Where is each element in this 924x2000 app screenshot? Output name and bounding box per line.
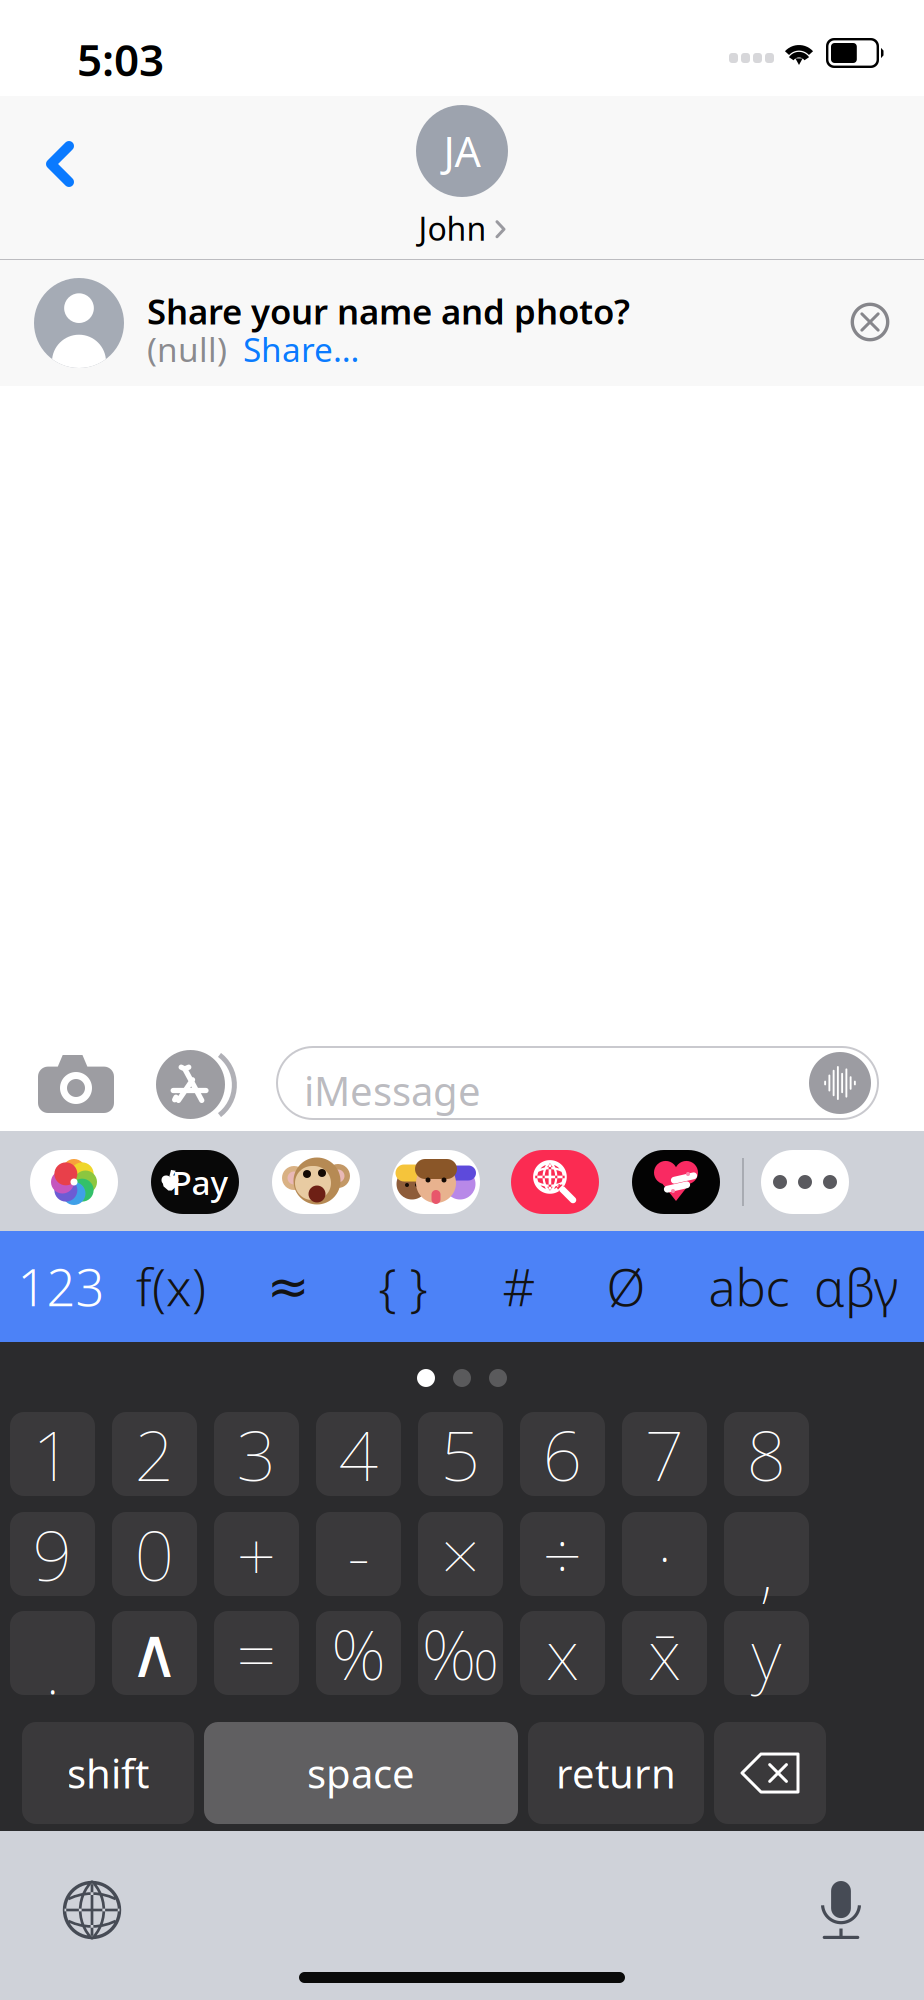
button[interactable]: Memoji <box>272 1150 360 1214</box>
button[interactable]: Camera <box>0 1038 118 1131</box>
staticText: αβγ <box>814 1253 898 1320</box>
staticText: ‰ <box>421 1607 499 1699</box>
staticText: 6 <box>542 1408 582 1500</box>
button[interactable]: 4 <box>316 1412 401 1496</box>
staticText: 9 <box>32 1508 72 1600</box>
button[interactable]: ∧ <box>112 1611 197 1695</box>
staticText: 5 <box>440 1408 480 1500</box>
button[interactable]: Audio message <box>809 1052 871 1114</box>
staticText: shift <box>67 1746 149 1799</box>
button[interactable]: space <box>204 1722 518 1824</box>
button[interactable]: 0 <box>112 1512 197 1596</box>
staticText: 5:03 <box>77 30 164 88</box>
button[interactable]: Apple Pay <box>151 1150 239 1214</box>
button[interactable]: , <box>724 1512 809 1596</box>
button[interactable]: 1 <box>10 1412 95 1496</box>
button[interactable]: 2 <box>112 1412 197 1496</box>
staticText: # <box>502 1253 535 1320</box>
staticText: John <box>418 207 486 249</box>
staticText: ≈ <box>267 1258 309 1315</box>
button[interactable]: ‰ <box>418 1611 503 1695</box>
button[interactable]: Memoji stickers <box>392 1150 480 1214</box>
button[interactable]: More <box>761 1150 849 1214</box>
button[interactable]: Dictate <box>786 1855 896 1965</box>
button[interactable]: x <box>520 1611 605 1695</box>
button[interactable]: Share… <box>227 327 359 371</box>
staticText: + <box>236 1508 276 1600</box>
staticText: abc <box>708 1253 789 1320</box>
button[interactable]: = <box>214 1611 299 1695</box>
staticText: x <box>546 1607 579 1699</box>
staticText: Ø <box>606 1253 645 1320</box>
button[interactable]: × <box>418 1512 503 1596</box>
button[interactable]: { } <box>351 1231 455 1342</box>
button[interactable]: 5 <box>418 1412 503 1496</box>
staticText: ÷ <box>542 1508 582 1600</box>
staticText: - <box>347 1508 369 1600</box>
staticText: f(x) <box>136 1253 206 1320</box>
staticText: return <box>556 1746 676 1799</box>
button[interactable]: 7 <box>622 1412 707 1496</box>
button[interactable]: 123 <box>9 1231 113 1342</box>
button[interactable]: Apps <box>148 1038 258 1131</box>
button[interactable]: Switch keyboard <box>37 1855 147 1965</box>
staticText: ∧ <box>129 1614 180 1692</box>
staticText: , <box>760 1522 773 1614</box>
staticText: . <box>45 1621 60 1713</box>
button[interactable]: shift <box>22 1722 194 1824</box>
button[interactable]: 6 <box>520 1412 605 1496</box>
staticText: x̄ <box>648 1607 681 1699</box>
button[interactable]: # <box>467 1231 571 1342</box>
button[interactable]: y <box>724 1611 809 1695</box>
button[interactable]: Fitness <box>632 1150 720 1214</box>
staticText: iMessage <box>304 1064 481 1117</box>
button[interactable]: 8 <box>724 1412 809 1496</box>
button[interactable]: return <box>528 1722 704 1824</box>
button[interactable]: αβγ <box>804 1231 908 1342</box>
staticText: y <box>751 1607 781 1699</box>
button[interactable]: Ø <box>574 1231 678 1342</box>
button[interactable]: Back <box>0 118 104 214</box>
staticText: 123 <box>17 1253 104 1320</box>
staticText: space <box>307 1746 415 1799</box>
staticText: 4 <box>338 1408 378 1500</box>
button[interactable]: x̄ <box>622 1611 707 1695</box>
button[interactable]: f(x) <box>119 1231 223 1342</box>
button[interactable]: % <box>316 1611 401 1695</box>
button[interactable]: ≈ <box>236 1231 340 1342</box>
staticText: { } <box>378 1253 427 1320</box>
button[interactable]: . <box>10 1611 95 1695</box>
staticText: 1 <box>32 1408 72 1500</box>
button[interactable]: 9 <box>10 1512 95 1596</box>
button[interactable]: JA <box>312 105 612 247</box>
staticText: 7 <box>644 1408 684 1500</box>
staticText: (null) <box>147 327 227 371</box>
button[interactable]: · <box>622 1512 707 1596</box>
staticText: 0 <box>134 1508 174 1600</box>
staticText: 8 <box>746 1408 786 1500</box>
button[interactable]: Photos <box>30 1150 118 1214</box>
staticText: JA <box>443 124 480 178</box>
button[interactable]: Images <box>511 1150 599 1214</box>
button[interactable]: + <box>214 1512 299 1596</box>
button[interactable]: ÷ <box>520 1512 605 1596</box>
button[interactable]: 3 <box>214 1412 299 1496</box>
button[interactable]: abc <box>697 1231 801 1342</box>
staticText: × <box>440 1508 480 1600</box>
staticText: = <box>236 1607 276 1699</box>
staticText: Share… <box>243 327 359 371</box>
button[interactable]: Dismiss <box>830 282 910 362</box>
staticText: Pay <box>171 1160 228 1204</box>
staticText: · <box>657 1508 672 1600</box>
staticText: % <box>331 1607 386 1699</box>
staticText: 2 <box>134 1408 174 1500</box>
button[interactable]: Delete <box>714 1722 826 1824</box>
staticText: 3 <box>236 1408 276 1500</box>
staticText: Share your name and photo? <box>147 288 630 334</box>
button[interactable]: - <box>316 1512 401 1596</box>
